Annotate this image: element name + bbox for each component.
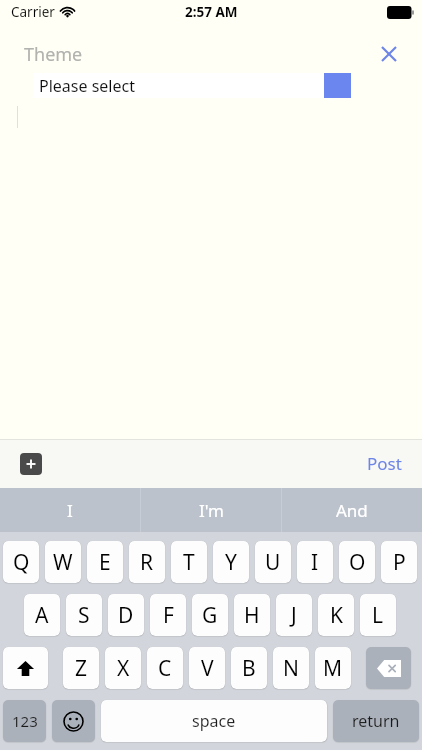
staticText: T <box>183 548 195 577</box>
staticText: X <box>117 654 130 683</box>
staticText: Z <box>75 654 88 683</box>
staticText: Y <box>225 548 237 577</box>
staticText: Q <box>13 548 30 577</box>
staticText: G <box>202 601 218 630</box>
staticText: C <box>158 654 172 683</box>
staticText: E <box>99 548 111 577</box>
staticText: M <box>323 654 343 683</box>
staticText: R <box>140 548 154 577</box>
button[interactable]: Y <box>213 541 249 583</box>
staticText: 2:57 AM <box>185 3 238 21</box>
button[interactable]: S <box>66 594 102 636</box>
button[interactable]: X <box>105 647 141 689</box>
button[interactable]: Z <box>63 647 99 689</box>
button[interactable]: return <box>333 700 419 742</box>
button[interactable]: Backspace <box>366 647 411 689</box>
button[interactable]: Q <box>3 541 39 583</box>
button[interactable]: Add attachment <box>20 453 42 475</box>
staticText: J <box>291 601 297 630</box>
staticText: D <box>118 601 134 630</box>
staticText: 123 <box>12 711 38 731</box>
button[interactable]: Post <box>359 446 410 481</box>
button[interactable]: F <box>150 594 186 636</box>
staticText: V <box>201 654 214 683</box>
button[interactable]: A <box>24 594 60 636</box>
staticText: W <box>53 548 73 577</box>
staticText: Post <box>367 452 402 475</box>
button[interactable]: R <box>129 541 165 583</box>
button[interactable]: W <box>45 541 81 583</box>
staticText: N <box>283 654 299 683</box>
button[interactable]: V <box>189 647 225 689</box>
button[interactable]: O <box>339 541 375 583</box>
button[interactable]: space <box>101 700 327 742</box>
button[interactable]: C <box>147 647 183 689</box>
button[interactable]: D <box>108 594 144 636</box>
button[interactable]: N <box>273 647 309 689</box>
button[interactable]: I'm <box>141 488 281 532</box>
staticText: B <box>242 654 256 683</box>
button[interactable]: Shift <box>3 647 48 689</box>
button[interactable]: G <box>192 594 228 636</box>
staticText: I <box>311 548 319 577</box>
button[interactable]: Please select <box>33 73 324 98</box>
button[interactable]: I <box>297 541 333 583</box>
button[interactable]: E <box>87 541 123 583</box>
staticText: K <box>330 601 343 630</box>
staticText: L <box>372 601 384 630</box>
staticText: return <box>352 710 400 732</box>
staticText: Carrier <box>11 3 55 21</box>
staticText: O <box>349 548 366 577</box>
staticText: S <box>78 601 90 630</box>
staticText: F <box>163 601 174 630</box>
staticText: U <box>265 548 281 577</box>
staticText: I'm <box>199 499 224 522</box>
button[interactable]: J <box>276 594 312 636</box>
staticText: P <box>393 548 406 577</box>
button[interactable]: U <box>255 541 291 583</box>
button[interactable]: I <box>0 488 140 532</box>
staticText: Please select <box>39 75 135 97</box>
button[interactable]: P <box>381 541 417 583</box>
button[interactable]: And <box>282 488 422 532</box>
button[interactable]: T <box>171 541 207 583</box>
button[interactable]: K <box>318 594 354 636</box>
button[interactable]: 123 <box>3 700 46 742</box>
button[interactable]: Close <box>372 38 406 70</box>
button[interactable]: M <box>315 647 351 689</box>
button[interactable]: Emoji <box>52 700 95 742</box>
staticText: I <box>67 499 73 522</box>
staticText: And <box>336 499 368 522</box>
staticText: A <box>35 601 49 630</box>
staticText: H <box>244 601 260 630</box>
button[interactable]: L <box>360 594 396 636</box>
staticText: space <box>192 710 236 732</box>
button[interactable]: B <box>231 647 267 689</box>
button[interactable]: H <box>234 594 270 636</box>
staticText: Theme <box>24 42 83 67</box>
